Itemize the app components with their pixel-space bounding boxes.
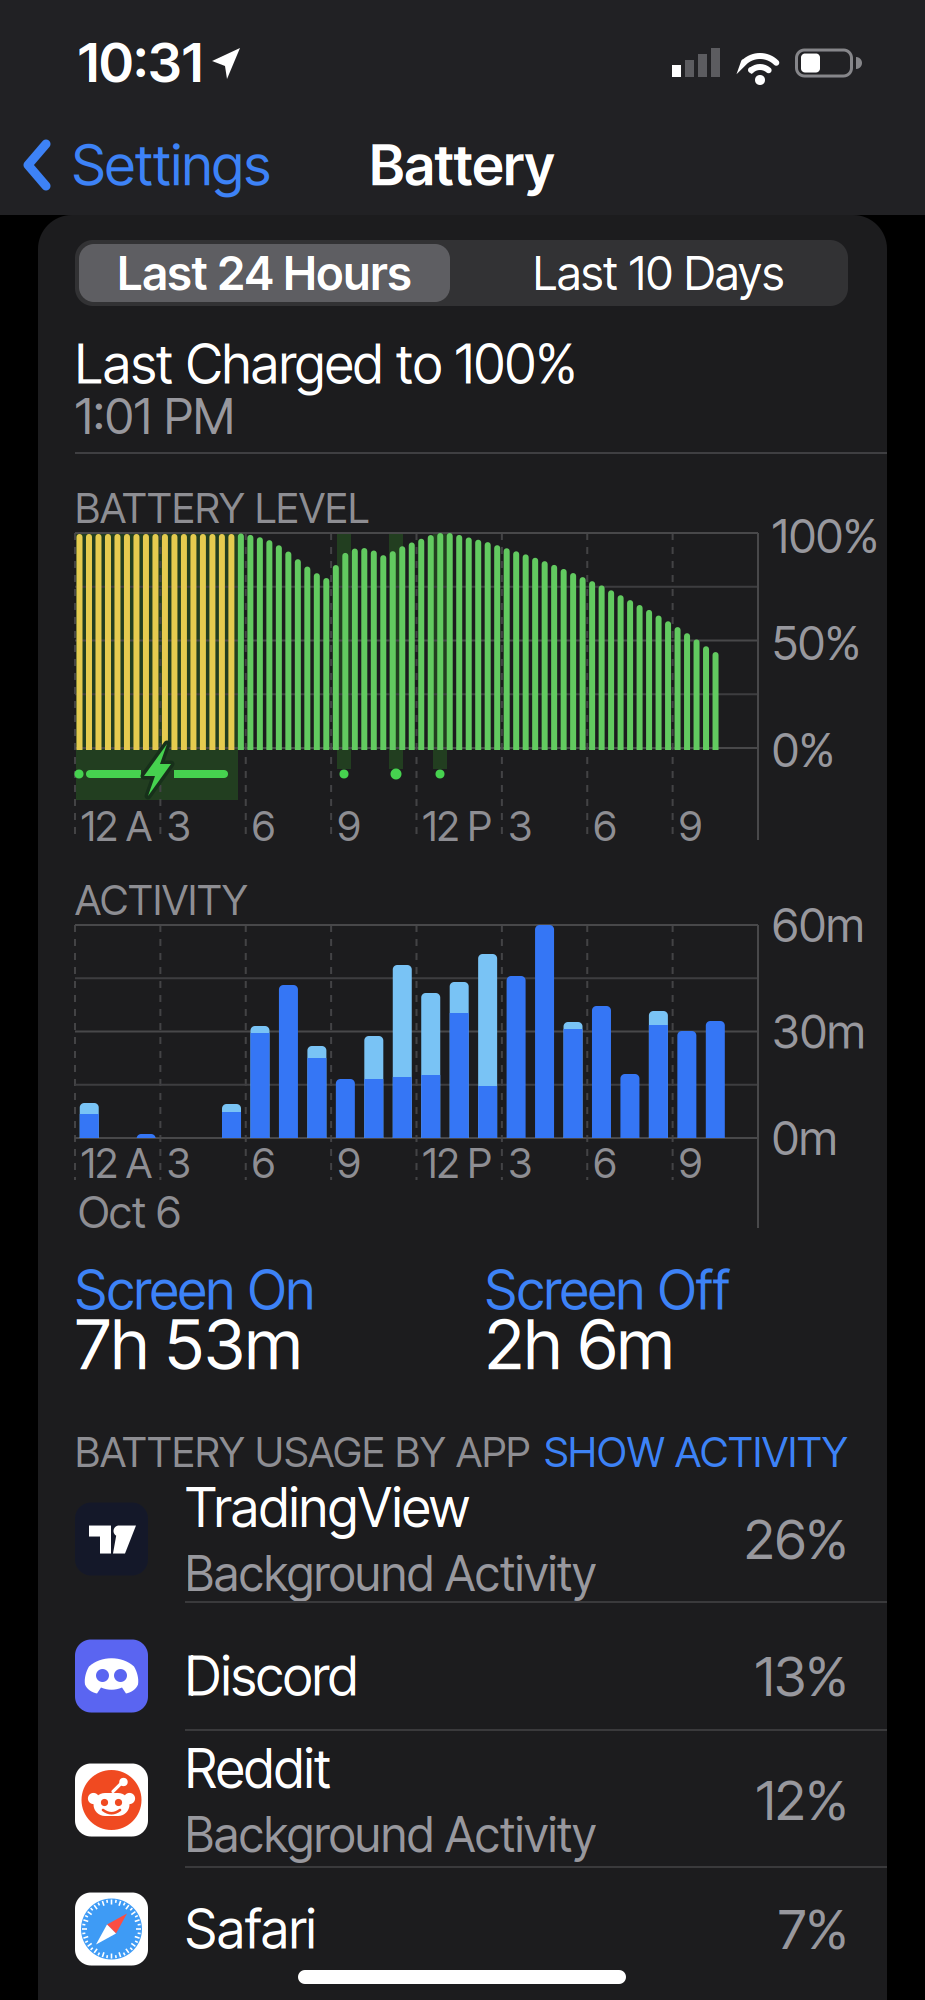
staticText: 6 [593, 802, 616, 850]
staticText: 9 [337, 1139, 360, 1187]
staticText: 50% [772, 615, 861, 671]
staticText: Battery [369, 132, 554, 198]
staticText: 12 P [422, 802, 491, 850]
staticText: Screen On [75, 1258, 315, 1321]
staticText: Safari [185, 1897, 316, 1960]
staticText: Last 10 Days [533, 245, 784, 301]
staticText: SHOW ACTIVITY [544, 1428, 848, 1476]
staticText: ACTIVITY [75, 876, 248, 924]
staticText: Last Charged to 100% [75, 332, 577, 395]
button[interactable]: Reddit [75, 1736, 887, 1864]
button[interactable]: SHOW ACTIVITY [508, 1425, 848, 1479]
staticText: Background Activity [185, 1806, 596, 1863]
staticText: 3 [166, 1139, 190, 1187]
staticText: 12 A [81, 802, 152, 850]
staticText: 7h 53m [75, 1303, 302, 1385]
staticText: TradingView [185, 1476, 470, 1539]
staticText: 10:31 [78, 30, 203, 94]
staticText: 12 A [81, 1139, 152, 1187]
staticText: 13% [755, 1644, 848, 1708]
button[interactable]: Last 10 Days [469, 240, 847, 306]
staticText: 9 [679, 802, 702, 850]
staticText: 9 [337, 802, 360, 850]
staticText: 6 [593, 1139, 616, 1187]
button[interactable]: Discord [75, 1612, 887, 1740]
staticText: 3 [508, 1139, 532, 1187]
staticText: Reddit [185, 1737, 331, 1800]
button[interactable]: Safari [75, 1865, 887, 1993]
staticText: 1:01 PM [75, 387, 235, 445]
staticText: 7% [778, 1897, 848, 1961]
staticText: BATTERY LEVEL [75, 484, 369, 532]
staticText: 12% [756, 1768, 848, 1832]
staticText: 100% [772, 508, 879, 564]
staticText: Background Activity [185, 1545, 596, 1602]
staticText: 0% [772, 722, 835, 778]
button[interactable]: Back [24, 134, 324, 196]
button[interactable]: TradingView [75, 1475, 887, 1603]
staticText: 3 [508, 802, 532, 850]
staticText: 2h 6m [485, 1303, 674, 1385]
staticText: Discord [185, 1644, 358, 1707]
staticText: Settings [72, 132, 271, 198]
staticText: BATTERY USAGE BY APP [75, 1428, 530, 1476]
button[interactable]: Last 24 Hours [75, 240, 453, 306]
staticText: 3 [166, 802, 190, 850]
staticText: Screen Off [485, 1258, 730, 1321]
staticText: 60m [772, 897, 864, 953]
staticText: 12 P [422, 1139, 491, 1187]
staticText: 30m [772, 1004, 865, 1059]
staticText: 9 [679, 1139, 702, 1187]
staticText: 26% [744, 1507, 848, 1571]
staticText: 0m [772, 1110, 837, 1166]
staticText: Oct 6 [78, 1186, 181, 1238]
staticText: 6 [252, 802, 275, 850]
staticText: 6 [252, 1139, 275, 1187]
staticText: Last 24 Hours [117, 245, 411, 301]
